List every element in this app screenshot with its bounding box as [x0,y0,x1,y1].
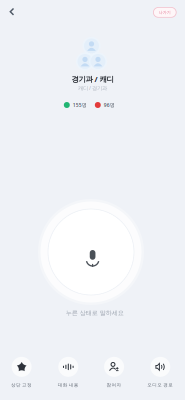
button[interactable]: Back [0,0,24,24]
button[interactable]: 상단 고정 [0,356,45,389]
staticText: 오디오 경로 [147,382,173,388]
button[interactable]: 오디오 경로 [137,356,183,389]
staticText: 누른 상태로 말하세요 [66,309,124,317]
button[interactable]: 대화 내용 [45,356,91,389]
staticText: 96명 [104,102,115,108]
button[interactable]: Push to talk [38,199,144,305]
staticText: 155명 [73,102,87,108]
button[interactable]: 나가기 [153,7,176,17]
staticText: 경기과 / 캐디 [71,74,113,84]
staticText: 캐디 / 경기과 [78,84,107,92]
staticText: 나가기 [159,10,171,15]
staticText: 상단 고정 [11,382,32,388]
staticText: 대화 내용 [58,382,79,388]
button[interactable]: 참여자 [91,356,137,389]
staticText: 참여자 [107,382,122,388]
